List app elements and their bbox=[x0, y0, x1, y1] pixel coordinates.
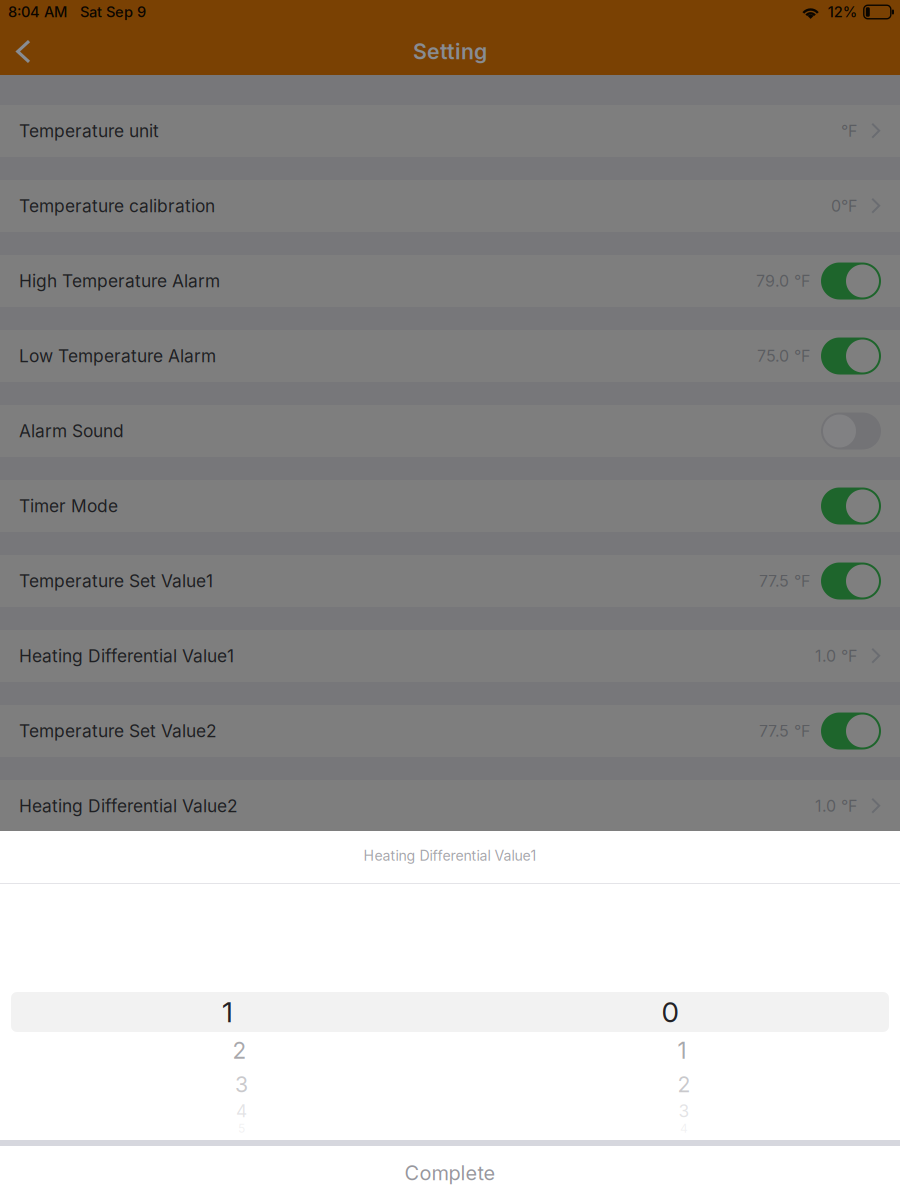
staticText: 1 bbox=[677, 1037, 686, 1064]
staticText: 5 bbox=[238, 1121, 245, 1136]
staticText: Temperature unit bbox=[19, 120, 159, 141]
button[interactable]: Heating Differential Value1 bbox=[0, 630, 900, 682]
staticText: Temperature Set Value1 bbox=[19, 570, 213, 591]
button[interactable]: Timer Mode bbox=[0, 480, 900, 532]
staticText: 1.0 °F bbox=[815, 646, 857, 666]
staticText: 3 bbox=[678, 1100, 689, 1121]
staticText: 2 bbox=[677, 1072, 690, 1097]
staticText: 0°F bbox=[831, 196, 857, 216]
staticText: Alarm Sound bbox=[19, 420, 124, 441]
button[interactable]: Temperature unit bbox=[0, 105, 900, 157]
staticText: Low Temperature Alarm bbox=[19, 345, 216, 366]
button[interactable]: Heating Differential Value2 bbox=[0, 780, 900, 832]
staticText: 4 bbox=[680, 1121, 688, 1136]
button[interactable]: Alarm Sound bbox=[0, 405, 900, 457]
staticText: Heating Differential Value1 bbox=[363, 847, 536, 864]
staticText: 1 bbox=[222, 995, 233, 1029]
staticText: 4 bbox=[236, 1100, 247, 1121]
staticText: Sat Sep 9 bbox=[80, 3, 146, 21]
staticText: Heating Differential Value1 bbox=[19, 645, 234, 666]
staticText: Timer Mode bbox=[19, 495, 118, 516]
staticText: Temperature calibration bbox=[19, 195, 215, 216]
button[interactable]: Low Temperature Alarm bbox=[0, 330, 900, 382]
button[interactable]: Temperature calibration bbox=[0, 180, 900, 232]
staticText: 75.0 °F bbox=[757, 346, 810, 366]
staticText: Temperature Set Value2 bbox=[19, 720, 217, 741]
staticText: 79.0 °F bbox=[756, 271, 810, 291]
staticText: Heating Differential Value2 bbox=[19, 795, 238, 816]
button[interactable]: Back bbox=[0, 28, 52, 75]
staticText: 2 bbox=[232, 1037, 246, 1064]
staticText: 77.5 °F bbox=[759, 571, 810, 591]
button[interactable]: High Temperature Alarm bbox=[0, 255, 900, 307]
staticText: 1.0 °F bbox=[815, 796, 857, 816]
staticText: 0 bbox=[661, 995, 678, 1029]
button[interactable]: Complete bbox=[0, 1146, 900, 1200]
button[interactable]: Temperature Set Value2 bbox=[0, 705, 900, 757]
staticText: 77.5 °F bbox=[759, 721, 810, 741]
staticText: High Temperature Alarm bbox=[19, 270, 220, 291]
staticText: Setting bbox=[413, 39, 487, 64]
staticText: °F bbox=[841, 121, 857, 141]
button[interactable]: Temperature Set Value1 bbox=[0, 555, 900, 607]
staticText: Complete bbox=[404, 1161, 495, 1185]
staticText: 3 bbox=[235, 1072, 248, 1097]
staticText: 12% bbox=[828, 3, 858, 21]
staticText: 8:04 AM bbox=[8, 3, 67, 21]
